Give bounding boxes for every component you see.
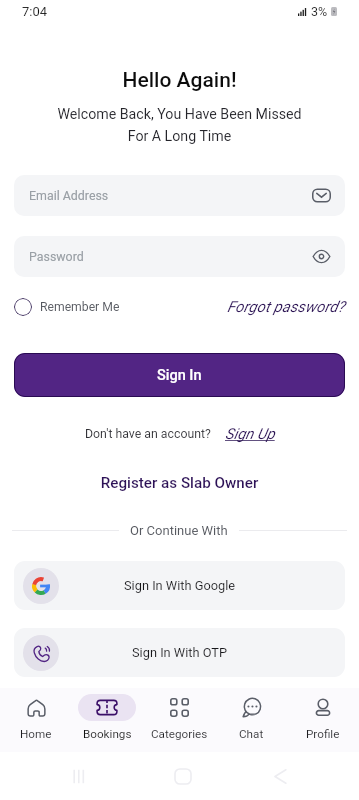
staticText: Hello Again!: [0, 68, 359, 93]
button[interactable]: Home: [175, 769, 191, 784]
staticText: Profile: [306, 727, 340, 741]
button[interactable]: Sign In: [14, 353, 345, 397]
other: Email: [312, 186, 331, 205]
staticText: Welcome Back, You Have Been Missed For A…: [0, 106, 359, 145]
button[interactable]: Remember Me: [14, 295, 120, 319]
staticText: Home: [20, 727, 52, 741]
button[interactable]: Categories: [143, 694, 215, 741]
button[interactable]: Chat: [215, 694, 287, 741]
button[interactable]: Password: [14, 236, 345, 277]
button[interactable]: Email Address: [14, 175, 345, 216]
staticText: Bookings: [83, 727, 132, 741]
staticText: 7:04: [22, 4, 48, 19]
staticText: Don't have an account?: [85, 427, 211, 441]
button[interactable]: Recents: [73, 769, 85, 784]
staticText: Sign In With OTP: [132, 645, 228, 660]
button[interactable]: Register as Slab Owner: [0, 474, 359, 492]
staticText: Or Continue With: [130, 523, 228, 538]
button[interactable]: Back: [273, 769, 287, 784]
button[interactable]: Sign Up: [225, 425, 275, 443]
staticText: Sign In With Google: [124, 578, 236, 593]
staticText: Categories: [151, 727, 208, 741]
button[interactable]: Sign In With OTP: [14, 628, 345, 677]
staticText: Email Address: [29, 188, 109, 203]
button[interactable]: Sign In With Google: [14, 561, 345, 610]
other: Show password: [312, 247, 331, 266]
button[interactable]: Home: [0, 694, 71, 741]
button[interactable]: Forgot password?: [227, 295, 345, 319]
staticText: Password: [29, 249, 84, 264]
staticText: Chat: [239, 727, 264, 741]
button[interactable]: Profile: [287, 694, 359, 741]
button[interactable]: Bookings: [71, 694, 143, 741]
staticText: Sign In: [157, 367, 202, 384]
staticText: Remember Me: [40, 300, 120, 314]
staticText: 3%: [311, 4, 328, 19]
